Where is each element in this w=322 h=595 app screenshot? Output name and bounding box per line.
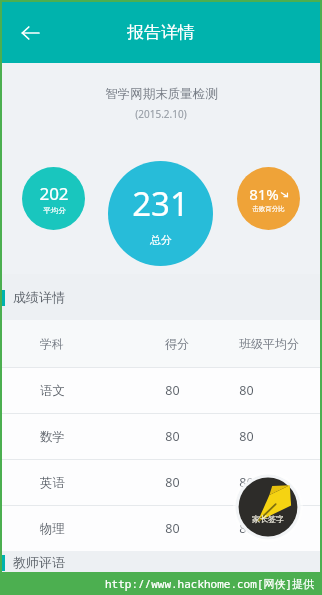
staticText: 80 — [165, 520, 180, 537]
staticText: 语文 — [40, 383, 65, 399]
staticText: 报告详情 — [127, 22, 195, 43]
staticText: 家长签字 — [252, 514, 284, 524]
staticText: 81% — [249, 184, 279, 204]
staticText: 总分 — [150, 233, 172, 247]
staticText: 击败百分比 — [252, 205, 285, 213]
staticText: 英语 — [40, 475, 65, 491]
staticText: 教师评语 — [13, 554, 65, 570]
staticText: 80 — [165, 474, 180, 491]
button[interactable]: 数学 — [2, 414, 320, 459]
staticText: 80 — [239, 474, 254, 491]
button[interactable]: 家长签字 — [233, 472, 303, 542]
staticText: 得分 — [165, 336, 189, 351]
staticText: 80 — [165, 382, 180, 399]
staticText: 231 — [132, 181, 189, 226]
staticText: 班级平均分 — [239, 336, 299, 351]
staticText: 物理 — [40, 521, 65, 537]
button[interactable]: 平均分 202 — [22, 167, 85, 230]
staticText: http://www.hackhome.com[网侠]提供 — [105, 576, 314, 591]
staticText: 平均分 — [43, 206, 66, 215]
button[interactable]: 语文 — [2, 368, 320, 413]
staticText: 数学 — [40, 429, 65, 445]
staticText: (2015.2.10) — [135, 107, 187, 121]
button[interactable]: 总分 231 — [108, 161, 213, 266]
button[interactable]: 物理 — [2, 506, 320, 551]
staticText: 202 — [39, 182, 69, 205]
staticText: 80 — [165, 428, 180, 445]
staticText: 80 — [239, 520, 254, 537]
staticText: 80 — [239, 382, 254, 399]
staticText: 学科 — [40, 336, 64, 351]
staticText: 成绩详情 — [13, 289, 65, 305]
button[interactable]: 击败百分比 81% — [237, 167, 300, 230]
staticText: 80 — [239, 428, 254, 445]
staticText: 智学网期末质量检测 — [105, 86, 218, 102]
button[interactable]: 英语 — [2, 460, 320, 505]
button[interactable]: Back — [12, 15, 48, 51]
button[interactable]: 学科 — [2, 320, 320, 367]
